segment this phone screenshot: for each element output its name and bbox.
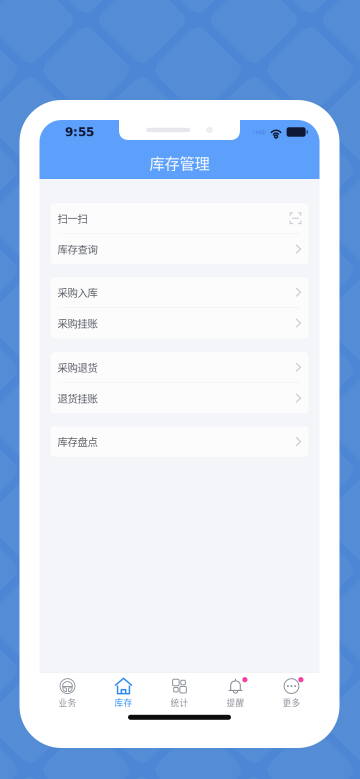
staticText: 退货挂账 xyxy=(57,390,97,406)
button[interactable]: 采购退货 xyxy=(50,352,308,383)
button[interactable]: 采购入库 xyxy=(50,277,308,308)
button[interactable]: 库存 xyxy=(95,673,151,707)
staticText: 库存查询 xyxy=(57,241,97,257)
staticText: 库存盘点 xyxy=(57,434,97,449)
staticText: 统计 xyxy=(170,696,188,709)
staticText: 更多 xyxy=(282,696,300,709)
staticText: 扫一扫 xyxy=(57,211,87,226)
staticText: 9:55 xyxy=(65,125,94,139)
button[interactable]: 扫一扫 xyxy=(50,203,308,234)
button[interactable]: 统计 xyxy=(151,673,207,707)
staticText: 采购入库 xyxy=(57,285,97,300)
button[interactable]: 更多 xyxy=(263,673,319,707)
button[interactable]: 采购挂账 xyxy=(50,308,308,338)
button[interactable]: 库存盘点 xyxy=(50,426,308,457)
staticText: 提醒 xyxy=(226,696,244,709)
staticText: 库存 xyxy=(114,696,132,709)
button[interactable]: 业务 xyxy=(39,673,95,707)
button[interactable]: 退货挂账 xyxy=(50,383,308,413)
button[interactable]: 提醒 xyxy=(207,673,263,707)
staticText: 库存管理 xyxy=(149,151,209,174)
staticText: 采购退货 xyxy=(57,360,97,375)
staticText: 采购挂账 xyxy=(57,315,97,331)
staticText: 业务 xyxy=(58,696,76,709)
button[interactable]: 库存查询 xyxy=(50,234,308,264)
